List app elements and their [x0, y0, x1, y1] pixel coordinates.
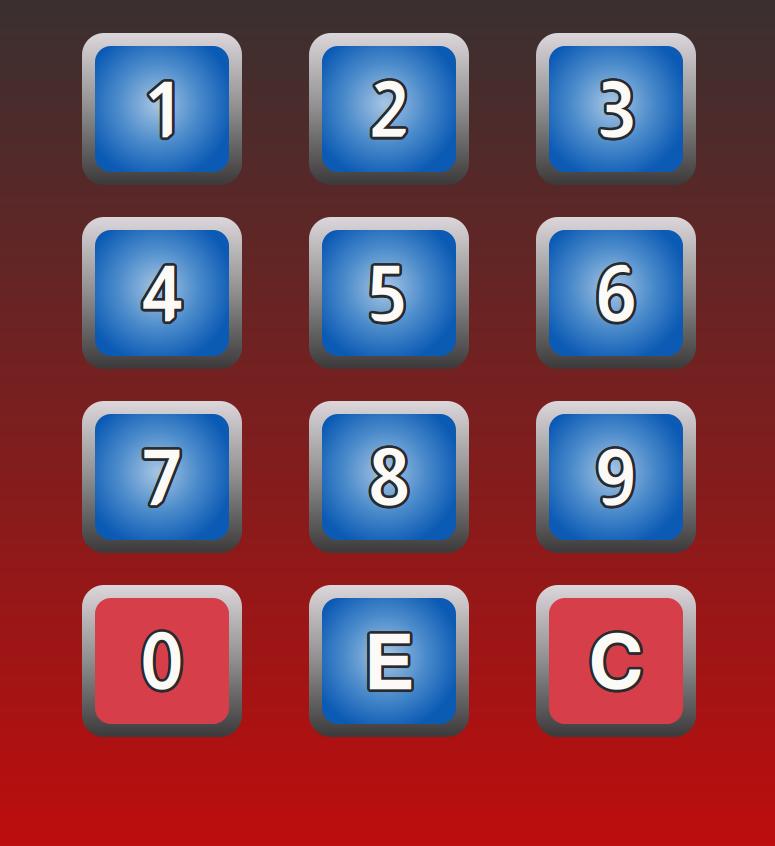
staticText: 4 — [140, 253, 181, 339]
staticText: 9 — [596, 437, 637, 524]
staticText: 9 — [597, 433, 638, 519]
button[interactable]: E — [309, 585, 469, 737]
staticText: 2 — [370, 69, 408, 156]
staticText: 5 — [371, 248, 406, 334]
staticText: 0 — [142, 621, 185, 707]
staticText: 6 — [597, 253, 639, 339]
staticText: 4 — [144, 252, 185, 338]
staticText: 8 — [366, 434, 408, 520]
staticText: 8 — [367, 437, 409, 524]
staticText: 6 — [596, 248, 638, 335]
staticText: 0 — [138, 618, 181, 704]
staticText: 3 — [597, 69, 636, 156]
staticText: 9 — [593, 436, 634, 522]
staticText: 6 — [597, 250, 639, 336]
staticText: 5 — [370, 253, 405, 340]
staticText: 7 — [144, 436, 184, 522]
staticText: 3 — [596, 64, 635, 150]
button[interactable]: C — [536, 585, 696, 737]
staticText: 2 — [371, 64, 409, 151]
staticText: E — [362, 618, 412, 704]
staticText: 2 — [369, 64, 407, 151]
staticText: 9 — [593, 435, 634, 521]
staticText: C — [587, 621, 642, 707]
staticText: 4 — [139, 252, 180, 338]
staticText: C — [590, 617, 645, 703]
staticText: E — [366, 620, 416, 706]
button[interactable]: 3 — [536, 33, 696, 185]
staticText: 4 — [144, 251, 185, 337]
staticText: 6 — [595, 253, 637, 340]
staticText: 5 — [370, 249, 405, 335]
staticText: 7 — [142, 437, 182, 524]
staticText: 5 — [369, 250, 404, 336]
button[interactable]: 7 — [82, 401, 242, 553]
button[interactable]: 4 — [82, 217, 242, 369]
staticText: 1 — [144, 67, 175, 153]
staticText: 6 — [592, 251, 634, 337]
staticText: 2 — [371, 69, 409, 156]
staticText: E — [363, 621, 413, 708]
staticText: 5 — [371, 251, 406, 337]
staticText: 9 — [596, 432, 637, 519]
staticText: 8 — [369, 432, 411, 519]
staticText: 0 — [139, 617, 182, 703]
staticText: 1 — [145, 69, 176, 155]
staticText: 7 — [142, 435, 182, 521]
staticText: 5 — [374, 251, 409, 337]
staticText: 3 — [595, 69, 634, 156]
staticText: 7 — [140, 436, 180, 522]
staticText: 3 — [596, 67, 635, 153]
staticText: 6 — [593, 253, 635, 339]
button[interactable]: 2 — [309, 33, 469, 185]
staticText: 7 — [144, 434, 184, 520]
staticText: 1 — [144, 66, 175, 152]
staticText: 0 — [138, 620, 181, 706]
staticText: 1 — [147, 69, 178, 156]
staticText: 8 — [370, 433, 412, 519]
staticText: 9 — [598, 435, 639, 521]
staticText: 7 — [142, 432, 182, 518]
staticText: C — [589, 616, 644, 703]
staticText: C — [586, 620, 641, 706]
button[interactable]: 5 — [309, 217, 469, 369]
staticText: 4 — [143, 253, 184, 339]
staticText: 8 — [370, 437, 412, 523]
staticText: 7 — [144, 433, 184, 519]
staticText: 1 — [146, 64, 177, 150]
staticText: 5 — [372, 248, 407, 335]
staticText: 3 — [595, 69, 634, 155]
staticText: 9 — [594, 432, 635, 519]
staticText: 2 — [368, 69, 406, 155]
staticText: 8 — [366, 436, 408, 522]
staticText: 0 — [141, 621, 184, 708]
staticText: 2 — [367, 67, 405, 153]
staticText: 6 — [594, 248, 636, 335]
staticText: 3 — [598, 69, 637, 155]
staticText: 9 — [594, 437, 635, 523]
button[interactable]: 1 — [82, 33, 242, 185]
staticText: 3 — [594, 67, 633, 153]
staticText: 7 — [140, 433, 180, 519]
staticText: 6 — [593, 250, 635, 336]
staticText: 9 — [597, 437, 638, 523]
staticText: E — [362, 621, 412, 707]
staticText: 1 — [149, 67, 180, 153]
staticText: 7 — [141, 437, 181, 524]
staticText: 4 — [139, 251, 180, 337]
staticText: 9 — [593, 434, 634, 520]
staticText: 7 — [140, 437, 180, 523]
staticText: 6 — [598, 251, 640, 337]
staticText: 0 — [142, 617, 185, 703]
staticText: 9 — [598, 434, 639, 520]
button[interactable]: 6 — [536, 217, 696, 369]
staticText: 4 — [144, 250, 185, 336]
button[interactable]: 9 — [536, 401, 696, 553]
button[interactable]: 8 — [309, 401, 469, 553]
staticText: E — [364, 616, 414, 702]
staticText: C — [586, 619, 641, 705]
button[interactable]: 0 — [82, 585, 242, 737]
staticText: 8 — [367, 432, 409, 519]
staticText: E — [365, 621, 415, 708]
staticText: 1 — [144, 68, 175, 154]
